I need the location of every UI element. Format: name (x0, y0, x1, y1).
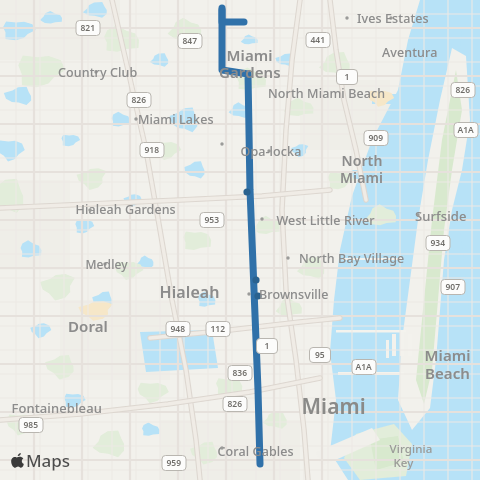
button[interactable]: Transit route map of Miami (0, 0, 480, 480)
button[interactable]: Apple Maps (8, 450, 82, 470)
